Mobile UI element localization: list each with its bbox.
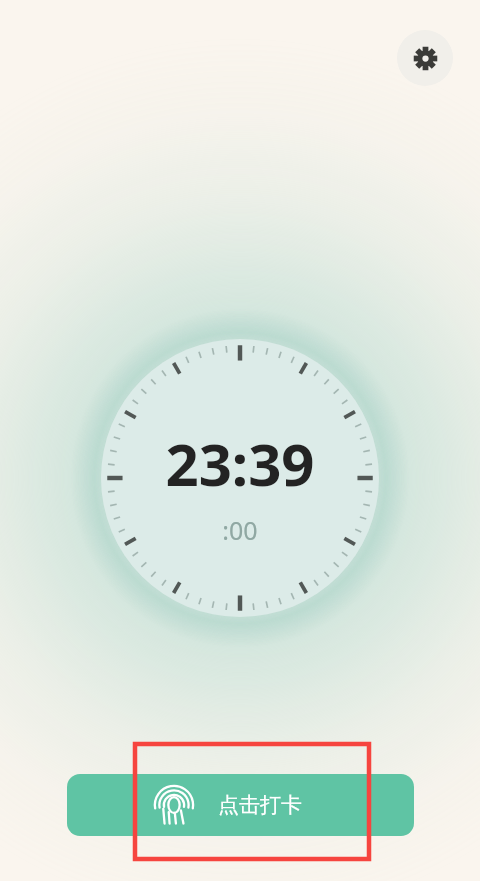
staticText: 点击打卡: [218, 792, 302, 818]
staticText: :00: [0, 513, 480, 547]
button[interactable]: Settings: [397, 30, 453, 86]
staticText: 23:39: [0, 424, 480, 503]
button[interactable]: 点击打卡: [67, 774, 414, 836]
